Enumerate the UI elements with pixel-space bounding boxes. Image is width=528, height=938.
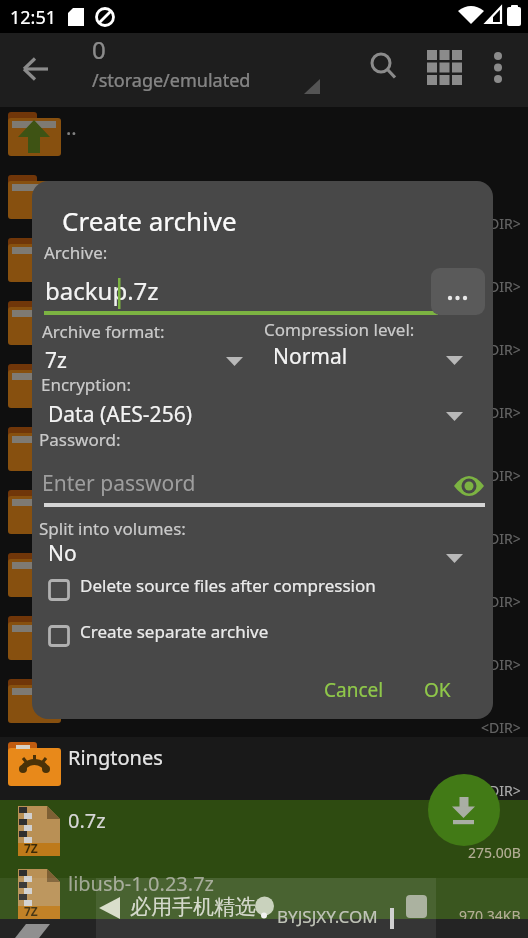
- button[interactable]: [431, 268, 485, 315]
- staticText: Data (AES-256): [48, 400, 192, 429]
- button[interactable]: [0, 422, 528, 485]
- staticText: <DIR>: [481, 277, 521, 296]
- staticText: 12:51: [10, 5, 57, 30]
- staticText: 7z: [45, 346, 67, 375]
- staticText: BYJSJXY.COM: [277, 905, 378, 928]
- button[interactable]: [478, 44, 522, 90]
- staticText: Password:: [39, 428, 121, 451]
- button[interactable]: [42, 401, 466, 435]
- button[interactable]: [0, 170, 528, 233]
- staticText: <DIR>: [481, 718, 521, 737]
- staticText: Enter password: [42, 469, 196, 498]
- staticText: libusb-1.0.23.7z: [68, 870, 214, 897]
- button[interactable]: [0, 233, 528, 296]
- button[interactable]: [0, 863, 528, 926]
- staticText: Archive:: [44, 241, 108, 264]
- staticText: Encryption:: [41, 373, 132, 396]
- staticText: 0.7z: [68, 807, 106, 834]
- button[interactable]: [0, 674, 528, 737]
- staticText: <DIR>: [481, 655, 521, 674]
- button[interactable]: [447, 466, 491, 508]
- button[interactable]: [44, 574, 464, 608]
- button[interactable]: [0, 548, 528, 611]
- button[interactable]: [0, 737, 528, 800]
- button[interactable]: [428, 774, 500, 846]
- button[interactable]: [42, 542, 466, 576]
- staticText: Create separate archive: [80, 620, 269, 643]
- button[interactable]: [0, 107, 528, 170]
- staticText: backup.7z: [45, 274, 159, 307]
- button[interactable]: [360, 44, 406, 90]
- staticText: /storage/emulated: [92, 68, 251, 93]
- button[interactable]: OK: [409, 668, 465, 712]
- button[interactable]: [14, 53, 60, 95]
- staticText: <DIR>: [481, 466, 521, 485]
- staticText: <DIR>: [481, 592, 521, 611]
- staticText: No: [48, 539, 77, 568]
- staticText: OK: [424, 677, 451, 703]
- staticText: 必用手机精选: [130, 894, 256, 920]
- staticText: 0: [92, 33, 106, 66]
- staticText: <DIR>: [481, 781, 521, 800]
- button[interactable]: [0, 296, 528, 359]
- staticText: Archive format:: [42, 320, 165, 343]
- button[interactable]: [270, 346, 466, 380]
- staticText: 7Z: [24, 903, 38, 919]
- button[interactable]: [44, 620, 464, 654]
- button[interactable]: [44, 270, 426, 316]
- button[interactable]: [0, 485, 528, 548]
- staticText: Compression level:: [264, 318, 415, 341]
- staticText: Create archive: [62, 203, 237, 238]
- staticText: Split into volumes:: [39, 517, 186, 540]
- button[interactable]: [420, 44, 468, 90]
- button[interactable]: [0, 800, 528, 863]
- staticText: <DIR>: [481, 340, 521, 359]
- button[interactable]: [80, 36, 360, 102]
- staticText: Cancel: [324, 677, 384, 703]
- staticText: <DIR>: [481, 529, 521, 548]
- button[interactable]: [42, 468, 466, 508]
- button[interactable]: [0, 359, 528, 422]
- staticText: Normal: [273, 342, 348, 371]
- staticText: Delete source files after compression: [80, 574, 376, 597]
- staticText: <DIR>: [481, 214, 521, 233]
- staticText: 7Z: [24, 840, 38, 856]
- button[interactable]: [236, 884, 294, 932]
- staticText: <DIR>: [481, 403, 521, 422]
- staticText: 970.34KB: [459, 906, 521, 925]
- staticText: Ringtones: [68, 744, 163, 771]
- button[interactable]: [42, 346, 246, 380]
- staticText: ..: [66, 114, 77, 141]
- button[interactable]: [80, 884, 142, 932]
- button[interactable]: [0, 611, 528, 674]
- staticText: 275.00B: [468, 843, 521, 862]
- button[interactable]: [384, 884, 446, 932]
- button[interactable]: Cancel: [308, 668, 400, 712]
